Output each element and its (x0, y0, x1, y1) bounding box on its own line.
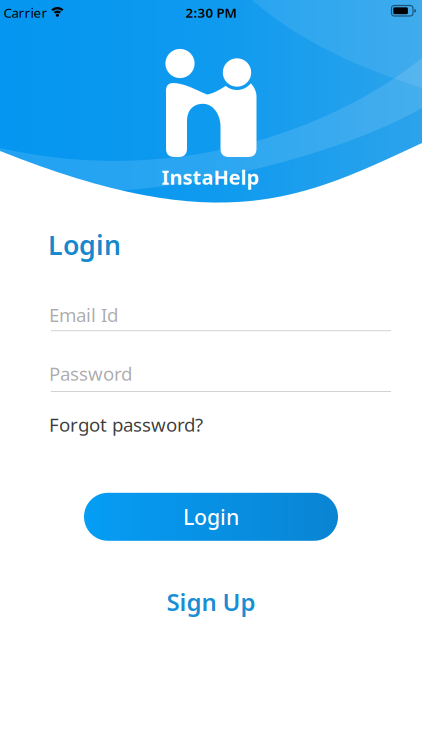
staticText: Password (49, 361, 132, 386)
staticText: Login (183, 503, 239, 531)
staticText: Forgot password? (49, 412, 203, 437)
button[interactable]: Forgot password? (0, 412, 203, 437)
button[interactable]: Sign Up (166, 586, 255, 618)
button[interactable]: Login (84, 493, 338, 541)
staticText: Sign Up (166, 586, 255, 618)
button[interactable]: Password (0, 361, 391, 392)
staticText: Email Id (49, 302, 118, 327)
staticText: 2:30 PM (185, 4, 236, 21)
staticText: Login (48, 227, 121, 262)
staticText: InstaHelp (161, 164, 259, 190)
staticText: Carrier (3, 4, 47, 21)
button[interactable]: Email Id (0, 302, 391, 331)
